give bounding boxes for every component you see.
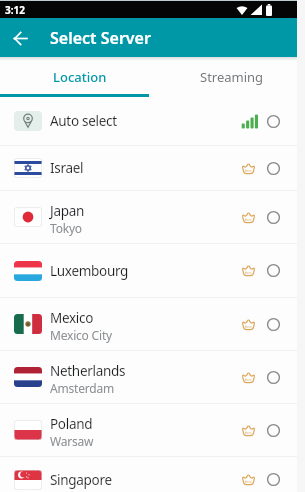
staticText: Location [53, 68, 107, 86]
staticText: Luxembourg [50, 262, 129, 280]
button[interactable]: Singapore [0, 457, 297, 492]
button[interactable] [8, 26, 32, 50]
button[interactable]: Japan [0, 191, 297, 244]
staticText: Tokyo [50, 220, 82, 236]
staticText: Japan [50, 202, 84, 220]
staticText: Streaming [200, 68, 264, 86]
staticText: Warsaw [50, 433, 94, 449]
staticText: Netherlands [50, 362, 126, 380]
staticText: Poland [50, 415, 93, 433]
button[interactable]: Mexico [0, 298, 297, 351]
staticText: Amsterdam [50, 380, 114, 396]
button[interactable]: Auto select [0, 97, 297, 146]
button[interactable]: Israel [0, 146, 297, 191]
staticText: Select Server [50, 27, 151, 49]
staticText: Mexico City [50, 327, 112, 343]
staticText: Israel [50, 159, 84, 177]
button[interactable]: Location [0, 57, 148, 97]
button[interactable]: Luxembourg [0, 244, 297, 298]
staticText: Mexico [50, 309, 94, 327]
staticText: Auto select [50, 112, 117, 130]
button[interactable]: Poland [0, 404, 297, 457]
staticText: 3:12 [5, 3, 25, 17]
button[interactable]: Streaming [148, 57, 297, 97]
staticText: Singapore [50, 471, 112, 489]
button[interactable]: Netherlands [0, 351, 297, 404]
